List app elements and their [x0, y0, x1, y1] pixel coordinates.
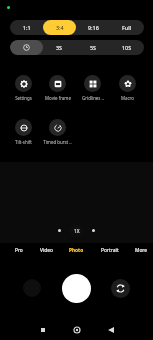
staticText: Gridlines ..: [82, 95, 104, 101]
staticText: 1X: [74, 228, 80, 234]
staticText: 5S: [90, 44, 97, 51]
button[interactable]: Recents: [32, 320, 54, 340]
button[interactable]: Back: [100, 320, 122, 340]
button[interactable]: Macro: [110, 75, 145, 101]
staticText: Photo: [69, 247, 84, 254]
staticText: 9:16: [88, 24, 99, 31]
staticText: Full: [122, 24, 132, 31]
button[interactable]: Tilt shift: [6, 119, 40, 145]
staticText: 3S: [56, 44, 63, 51]
button[interactable]: 9:16: [76, 20, 110, 35]
button[interactable]: Settings: [6, 75, 40, 101]
staticText: Movie frame: [45, 95, 71, 101]
button[interactable]: Home: [66, 320, 88, 340]
staticText: Pro: [15, 247, 23, 254]
staticText: 1:1: [23, 24, 31, 31]
button[interactable]: Switch camera: [111, 279, 130, 298]
button[interactable]: Zoom 0.6x: [53, 224, 66, 237]
staticText: Portrait: [101, 247, 119, 254]
staticText: More: [135, 247, 148, 254]
staticText: 3:4: [56, 24, 64, 31]
button[interactable]: Pro: [15, 244, 23, 256]
button[interactable]: Full: [110, 20, 144, 35]
button[interactable]: Video: [40, 244, 53, 256]
button[interactable]: Zoom 2x: [87, 224, 100, 237]
button[interactable]: 3S: [43, 40, 76, 55]
button[interactable]: 10S: [110, 40, 144, 55]
staticText: Tilt-shift: [15, 139, 32, 145]
button[interactable]: Timed burst: [40, 119, 75, 145]
button[interactable]: Gridlines: [75, 75, 110, 101]
staticText: Settings: [15, 95, 32, 101]
staticText: Timed burst ..: [43, 139, 72, 145]
button[interactable]: More: [135, 244, 148, 256]
button[interactable]: Portrait: [101, 244, 119, 256]
button[interactable]: Shutter: [62, 274, 91, 303]
button[interactable]: 1:1: [10, 20, 43, 35]
button[interactable]: Photo: [69, 244, 84, 256]
button[interactable]: 5S: [76, 40, 110, 55]
button[interactable]: Movie frame: [40, 75, 75, 101]
staticText: 10S: [122, 44, 132, 51]
button[interactable]: Gallery: [23, 279, 41, 297]
button[interactable]: 1X: [70, 225, 83, 237]
staticText: Video: [40, 247, 53, 254]
button[interactable]: 3:4: [43, 20, 76, 35]
staticText: Macro: [121, 95, 134, 101]
button[interactable]: Timer off: [10, 40, 43, 55]
